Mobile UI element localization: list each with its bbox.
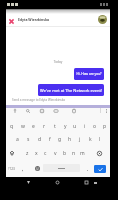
button[interactable]: g bbox=[55, 132, 65, 146]
staticText: e bbox=[32, 123, 35, 130]
staticText: c bbox=[44, 150, 47, 157]
staticText: ?123 bbox=[8, 167, 15, 171]
button[interactable]: j bbox=[75, 132, 85, 146]
button[interactable]: x bbox=[32, 146, 41, 160]
button[interactable]: Back bbox=[24, 178, 33, 187]
button[interactable]: We've met at The Network event! bbox=[38, 84, 104, 96]
button[interactable]: Emoji bbox=[33, 163, 42, 174]
staticText: b bbox=[63, 150, 67, 157]
staticText: j bbox=[79, 136, 81, 143]
staticText: Send a message to Edyta Wierzbinska bbox=[12, 98, 66, 102]
button[interactable]: Close bbox=[7, 17, 15, 25]
button[interactable]: Change keyboard bbox=[92, 179, 99, 187]
staticText: Hi. How are you? bbox=[74, 72, 104, 76]
staticText: p bbox=[103, 123, 107, 130]
button[interactable]: l bbox=[95, 132, 105, 146]
staticText: . bbox=[87, 166, 89, 172]
staticText: v bbox=[54, 150, 57, 157]
staticText: q bbox=[10, 123, 14, 130]
staticText: l bbox=[99, 136, 101, 143]
button[interactable]: y bbox=[60, 119, 70, 133]
staticText: Edyta Wierzbinska bbox=[18, 17, 50, 22]
button[interactable]: a bbox=[12, 132, 23, 146]
button[interactable]: f bbox=[45, 132, 55, 146]
staticText: o bbox=[93, 123, 97, 130]
button[interactable]: Recent apps bbox=[82, 178, 91, 187]
staticText: d bbox=[38, 136, 42, 143]
button[interactable]: Keyboard tool 4 bbox=[52, 107, 59, 114]
staticText: s bbox=[27, 136, 30, 143]
staticText: i bbox=[84, 123, 86, 130]
button[interactable]: Shift bbox=[6, 146, 18, 160]
button[interactable]: Space bbox=[43, 164, 80, 172]
button[interactable]: Keyboard tool 5 bbox=[70, 107, 77, 114]
staticText: a bbox=[16, 136, 19, 143]
button[interactable]: Keyboard tool 3 bbox=[38, 107, 45, 114]
button[interactable]: t bbox=[50, 119, 60, 133]
staticText: k bbox=[89, 136, 92, 143]
button[interactable]: Backspace bbox=[93, 146, 105, 160]
button[interactable]: z bbox=[23, 146, 32, 160]
button[interactable]: p bbox=[100, 119, 110, 133]
staticText: x bbox=[35, 150, 38, 157]
staticText: f bbox=[49, 136, 51, 143]
button[interactable]: v bbox=[51, 146, 60, 160]
button[interactable]: Contact photo bbox=[98, 15, 107, 24]
staticText: w bbox=[21, 123, 25, 130]
staticText: t bbox=[54, 123, 56, 130]
button[interactable]: k bbox=[85, 132, 95, 146]
button[interactable]: w bbox=[17, 119, 28, 133]
staticText: We've met at The Network event! bbox=[38, 88, 104, 93]
button[interactable]: o bbox=[90, 119, 100, 133]
button[interactable]: s bbox=[23, 132, 34, 146]
staticText: Today bbox=[6, 60, 110, 64]
staticText: r bbox=[43, 123, 46, 130]
button[interactable]: Keyboard tool 2 bbox=[24, 107, 31, 114]
button[interactable]: i bbox=[80, 119, 90, 133]
button[interactable]: b bbox=[60, 146, 69, 160]
staticText: n bbox=[72, 150, 76, 157]
button[interactable]: e bbox=[28, 119, 39, 133]
button[interactable]: r bbox=[39, 119, 50, 133]
button[interactable]: ?123 bbox=[5, 163, 17, 174]
button[interactable]: h bbox=[65, 132, 75, 146]
button[interactable]: d bbox=[34, 132, 45, 146]
button[interactable]: c bbox=[41, 146, 50, 160]
staticText: m bbox=[80, 150, 85, 157]
staticText: g bbox=[58, 136, 62, 143]
button[interactable]: Keyboard tool 1 bbox=[11, 107, 18, 114]
staticText: u bbox=[73, 123, 77, 130]
button[interactable]: m bbox=[78, 146, 87, 160]
button[interactable]: Hi. How are you? bbox=[74, 68, 104, 80]
button[interactable]: u bbox=[70, 119, 80, 133]
button[interactable]: Period bbox=[83, 163, 92, 174]
staticText: , bbox=[22, 166, 24, 172]
button[interactable]: More options bbox=[103, 107, 109, 114]
button[interactable]: Comma bbox=[18, 163, 27, 174]
staticText: y bbox=[64, 123, 67, 130]
staticText: h bbox=[68, 136, 72, 143]
button[interactable]: Home bbox=[53, 178, 62, 187]
staticText: z bbox=[26, 150, 29, 157]
button[interactable]: q bbox=[6, 119, 17, 133]
button[interactable]: Send bbox=[94, 165, 106, 173]
button[interactable]: n bbox=[69, 146, 78, 160]
